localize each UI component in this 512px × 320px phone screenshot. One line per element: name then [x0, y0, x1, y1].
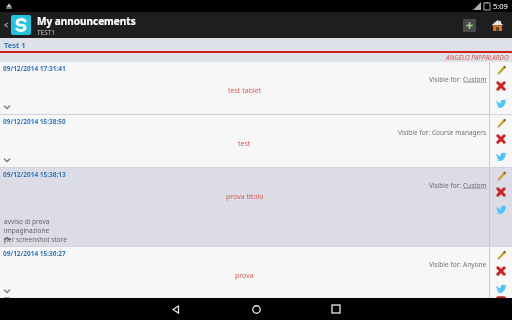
staticText: Test 1 — [4, 40, 26, 50]
staticText: 09/12/2014 15:36:27 — [3, 249, 66, 258]
button[interactable]: Add announcement — [460, 16, 478, 34]
button[interactable]: Back — [154, 298, 198, 320]
staticText: test — [238, 139, 251, 149]
button[interactable]: Expand — [0, 284, 14, 298]
button[interactable]: Expand — [0, 153, 14, 167]
button[interactable]: Edit — [490, 115, 512, 131]
staticText: test tablet — [228, 86, 262, 96]
staticText: My announcements — [37, 14, 136, 28]
staticText: TEST1 — [37, 28, 56, 37]
staticText: 09/12/2014 17:31:41 — [3, 64, 66, 73]
staticText: impaginazione — [4, 226, 50, 235]
staticText: ANGELO PAPPALARDO — [446, 53, 509, 62]
button[interactable]: 09/12/2014 15:38:13 — [0, 168, 512, 246]
staticText: 09/12/2014 15:38:50 — [3, 117, 66, 126]
staticText: Visible for: — [398, 128, 432, 137]
button[interactable]: Delete — [490, 184, 512, 200]
staticText: Visible for: — [429, 260, 463, 269]
button[interactable]: Custom — [463, 181, 487, 190]
button[interactable]: Home — [488, 16, 506, 34]
staticText: 5:09 — [493, 1, 508, 11]
button[interactable]: Delete — [490, 263, 512, 279]
button[interactable]: 09/12/2014 17:31:41 — [0, 62, 512, 114]
button[interactable]: Home — [234, 298, 278, 320]
button[interactable]: 09/12/2014 15:36:27 — [0, 247, 512, 298]
staticText: Visible for: — [429, 181, 463, 190]
staticText: prova — [235, 271, 254, 281]
button[interactable]: Edit — [490, 247, 512, 263]
staticText: avviso di prova — [4, 217, 50, 226]
button[interactable]: Recent apps — [314, 298, 358, 320]
button[interactable]: Edit — [490, 62, 512, 78]
button[interactable]: Course managers — [432, 128, 487, 137]
button[interactable]: Delete — [490, 131, 512, 147]
button[interactable]: Share on Twitter — [490, 147, 512, 163]
button[interactable]: 09/12/2014 15:38:50 — [0, 115, 512, 167]
staticText: per screenshot store — [4, 235, 67, 244]
button[interactable]: Delete — [490, 78, 512, 94]
button[interactable]: Share on Twitter — [490, 94, 512, 110]
button[interactable]: Edit — [490, 168, 512, 184]
staticText: prova titolo — [226, 192, 264, 202]
button[interactable]: Test 1 — [0, 38, 512, 51]
button[interactable]: Collapse — [0, 232, 14, 246]
button[interactable]: Custom — [463, 75, 487, 84]
button[interactable]: Expand — [0, 100, 14, 114]
button[interactable]: Share on Twitter — [490, 200, 512, 216]
staticText: 09/12/2014 15:38:13 — [3, 170, 66, 179]
button[interactable]: Share on Twitter — [490, 279, 512, 295]
staticText: Visible for: — [429, 75, 463, 84]
button[interactable]: Anyone — [463, 260, 487, 269]
